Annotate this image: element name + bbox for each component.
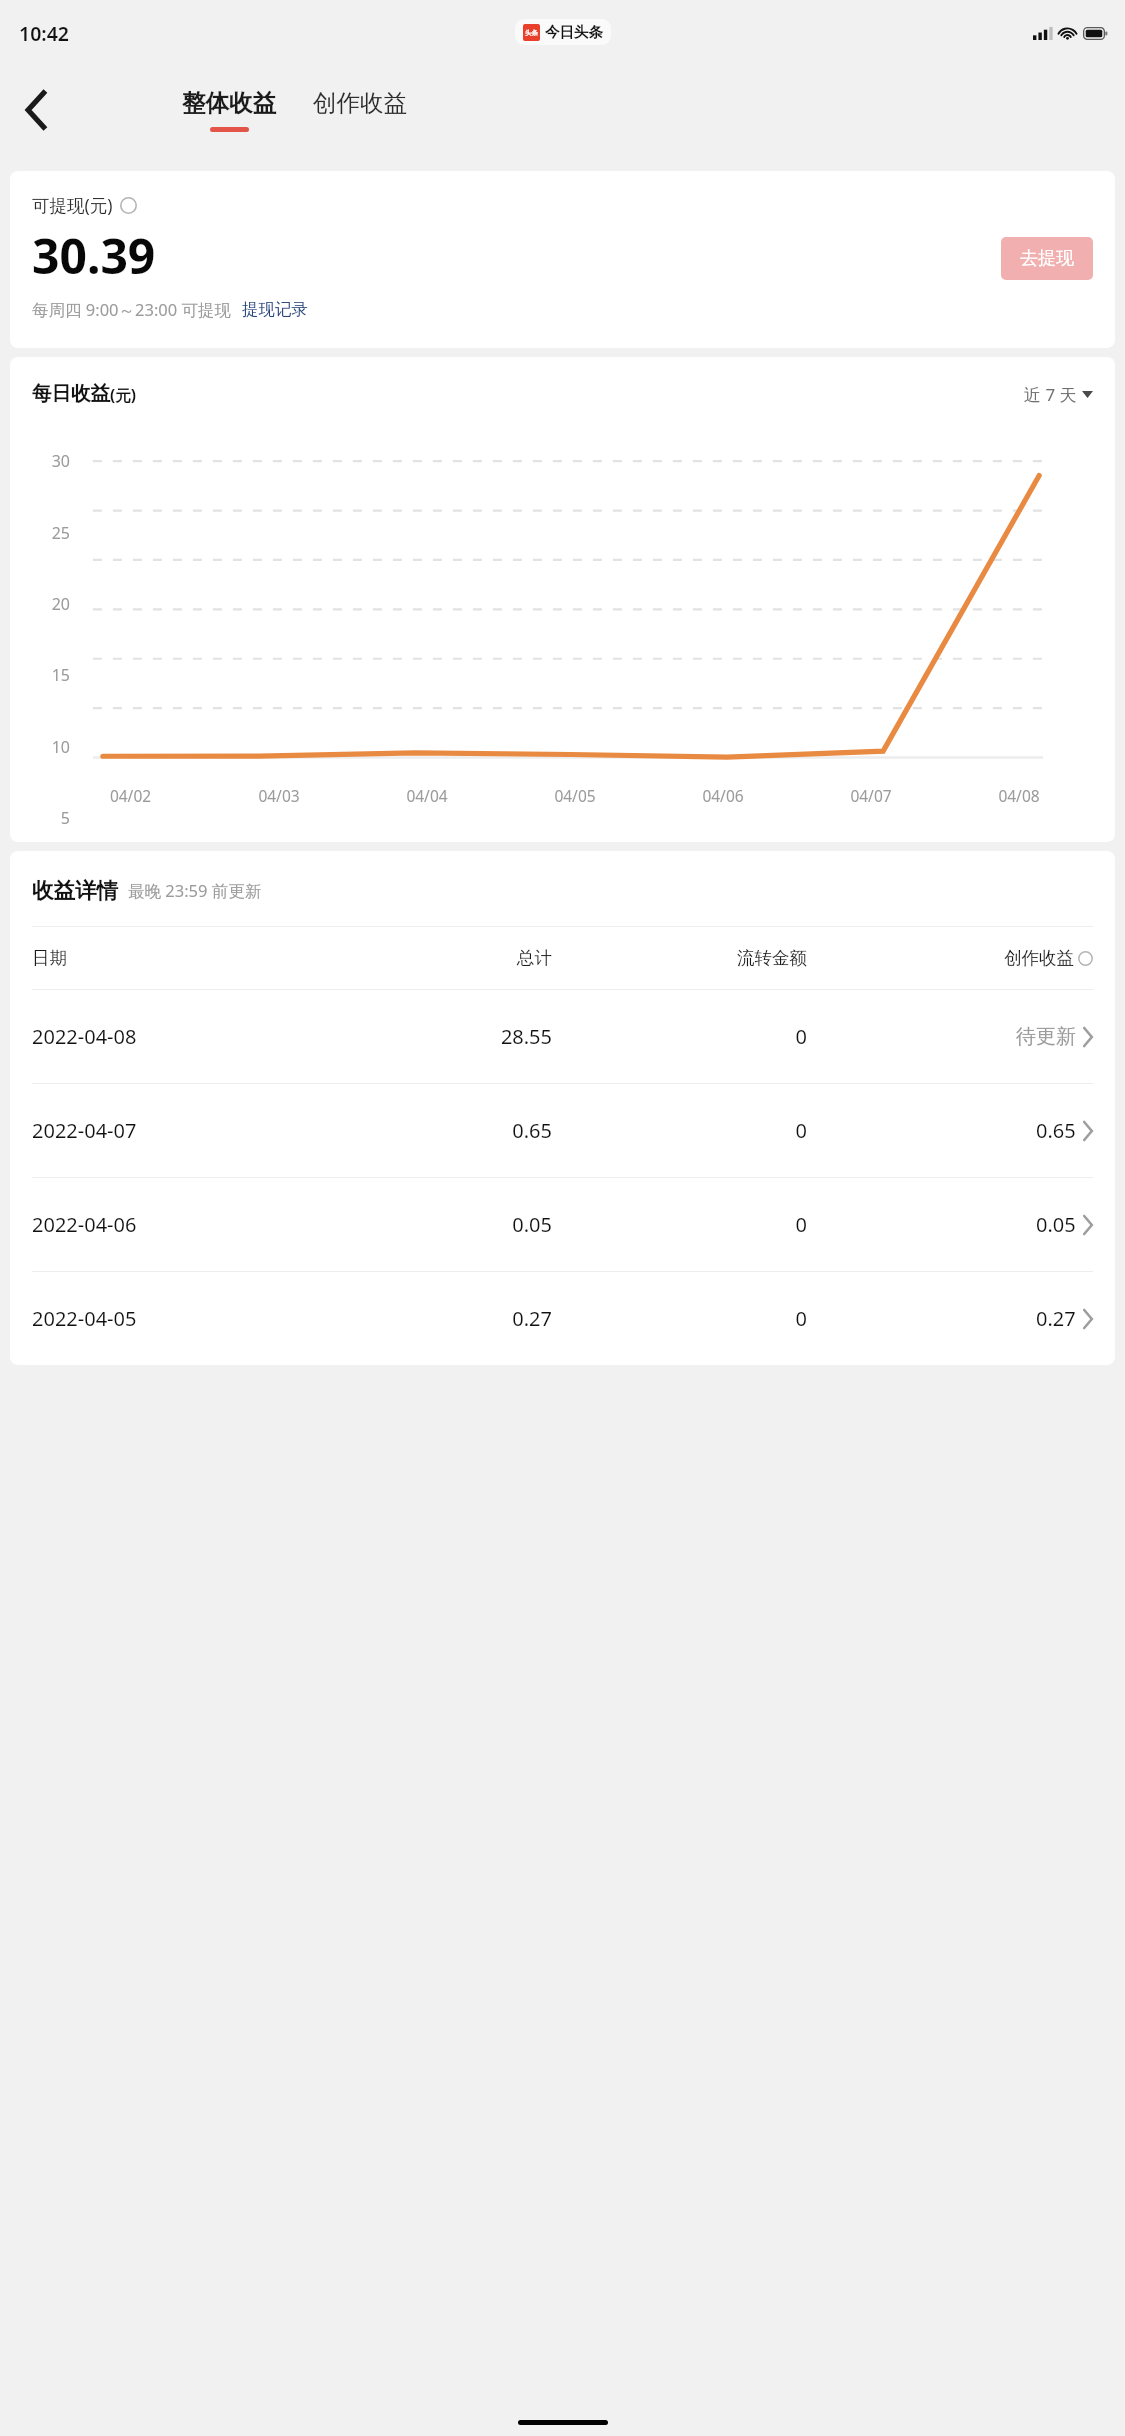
staticText: 04/06 <box>649 785 797 806</box>
button[interactable]: 去提现 <box>1001 237 1093 280</box>
staticText: 5 <box>24 807 70 829</box>
staticText: 30 <box>24 450 70 472</box>
staticText: 28.55 <box>348 1023 552 1050</box>
staticText: 总计 <box>348 947 552 969</box>
button[interactable]: 近 7 天 <box>1024 383 1093 406</box>
staticText: 待更新 <box>1016 1024 1076 1049</box>
staticText: 04/02 <box>56 785 205 806</box>
staticText: 15 <box>24 664 70 686</box>
button[interactable]: 整体收益 <box>178 88 280 132</box>
staticText: (元) <box>110 384 137 405</box>
staticText: 近 7 天 <box>1024 383 1077 406</box>
staticText: 提现记录 <box>242 299 308 320</box>
staticText: 收益详情 <box>32 877 118 904</box>
button[interactable]: 2022-04-07 <box>10 1084 1115 1177</box>
button[interactable]: 2022-04-08 <box>10 990 1115 1083</box>
staticText: 创作收益 <box>313 88 407 118</box>
staticText: 0.65 <box>348 1117 552 1144</box>
button[interactable]: 创作收益 <box>309 86 411 134</box>
button[interactable]: Back <box>8 82 64 138</box>
staticText: 流转金额 <box>552 947 807 969</box>
staticText: 0.65 <box>1036 1117 1076 1144</box>
staticText: 04/08 <box>945 785 1093 806</box>
staticText: 04/03 <box>205 785 353 806</box>
staticText: 2022-04-07 <box>32 1117 348 1144</box>
staticText: 创作收益 <box>1004 947 1074 969</box>
staticText: 0.05 <box>1036 1211 1076 1238</box>
button[interactable]: 提现记录 <box>242 299 308 320</box>
staticText: 04/07 <box>797 785 945 806</box>
staticText: 0 <box>552 1211 807 1238</box>
staticText: 10 <box>24 736 70 758</box>
staticText: 每日收益 <box>32 381 110 406</box>
staticText: 2022-04-06 <box>32 1211 348 1238</box>
staticText: 0 <box>552 1305 807 1332</box>
staticText: 20 <box>24 593 70 615</box>
staticText: 最晚 23:59 前更新 <box>128 879 262 902</box>
staticText: 10:42 <box>19 20 69 47</box>
staticText: 头条 <box>525 29 538 37</box>
staticText: 0 <box>552 1023 807 1050</box>
staticText: 0.27 <box>1036 1305 1076 1332</box>
staticText: 04/04 <box>353 785 501 806</box>
button[interactable]: 2022-04-05 <box>10 1272 1115 1365</box>
staticText: 2022-04-05 <box>32 1305 348 1332</box>
staticText: 整体收益 <box>182 88 276 118</box>
staticText: 可提现(元) <box>32 193 113 217</box>
staticText: 30.39 <box>32 223 156 288</box>
staticText: 今日头条 <box>545 23 603 41</box>
staticText: 04/05 <box>501 785 649 806</box>
staticText: 日期 <box>32 947 348 969</box>
staticText: 0.27 <box>348 1305 552 1332</box>
button[interactable]: 可提现(元) <box>32 193 137 217</box>
button[interactable]: 2022-04-06 <box>10 1178 1115 1271</box>
staticText: 25 <box>24 522 70 544</box>
staticText: 2022-04-08 <box>32 1023 348 1050</box>
staticText: 去提现 <box>1020 247 1074 270</box>
staticText: 0 <box>552 1117 807 1144</box>
staticText: 0.05 <box>348 1211 552 1238</box>
staticText: 每周四 9:00～23:00 可提现 <box>32 298 231 321</box>
